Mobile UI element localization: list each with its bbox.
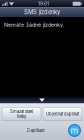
staticText: O aplikaci xyxy=(26,128,44,133)
button[interactable]: Objednat duplikát xyxy=(43,107,82,120)
button[interactable]: O aplikaci xyxy=(26,128,44,133)
staticText: Smazat staré xyxy=(10,109,33,114)
staticText: SMS jízdenky xyxy=(24,9,60,16)
staticText: m xyxy=(70,125,78,136)
staticText: Objednat duplikát xyxy=(46,111,79,116)
staticText: Nemáte žádné jízdenky. xyxy=(4,21,65,28)
staticText: 19:01 xyxy=(38,1,49,6)
button[interactable]: Smazat staré xyxy=(2,107,41,120)
staticText: lístky xyxy=(17,114,26,119)
